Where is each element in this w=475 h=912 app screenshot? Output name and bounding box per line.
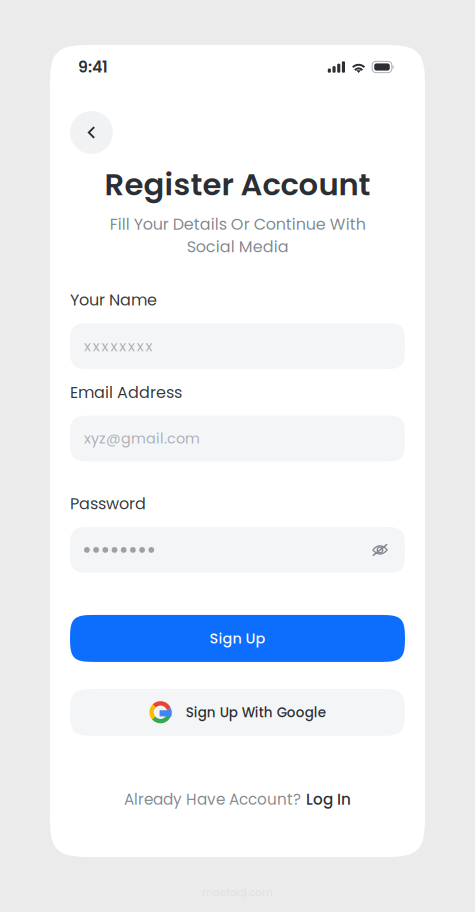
staticText: 9:41 [78,56,108,78]
button[interactable]: Show password [372,543,388,557]
button[interactable]: Sign Up [70,615,405,662]
staticText: xxxxxxxx [84,336,153,356]
staticText: mostaql.com [202,885,273,900]
staticText: Fill Your Details Or Continue With Socia… [109,213,365,258]
staticText: Log In [306,789,351,810]
button[interactable]: Sign Up With Google [70,689,405,736]
staticText: Sign Up With Google [186,703,326,722]
button[interactable]: Already Have Account? [50,789,425,810]
staticText: Password [70,492,146,515]
staticText: xyz@gmail.com [84,428,200,449]
staticText: Register Account [104,163,370,206]
staticText: Sign Up [209,628,265,649]
button[interactable]: Back [70,111,113,154]
staticText: Email Address [70,381,182,403]
staticText: Already Have Account? [124,789,301,810]
staticText: Your Name [70,289,157,311]
